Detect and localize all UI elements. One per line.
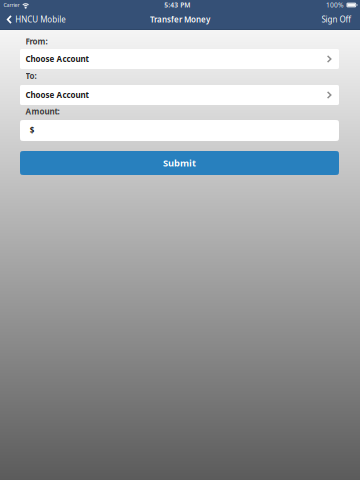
staticText: Choose Account (25, 90, 88, 100)
staticText: Choose Account (25, 54, 88, 64)
staticText: 5:43 PM (164, 1, 190, 9)
staticText: Carrier (3, 1, 19, 9)
staticText: $ (30, 125, 35, 136)
staticText: Amount: (25, 106, 59, 117)
staticText: 100% (326, 1, 344, 9)
staticText: Submit (163, 157, 196, 169)
staticText: Transfer Money (150, 14, 210, 25)
button[interactable]: Choose Account (20, 49, 339, 69)
button[interactable]: Submit (20, 151, 339, 175)
staticText: To: (25, 70, 36, 81)
button[interactable]: HNCU Mobile (0, 9, 72, 29)
button[interactable]: Sign Off (315, 9, 360, 29)
staticText: HNCU Mobile (15, 14, 66, 25)
staticText: Sign Off (321, 14, 351, 25)
button[interactable]: Choose Account (20, 85, 339, 105)
staticText: From: (25, 36, 47, 47)
